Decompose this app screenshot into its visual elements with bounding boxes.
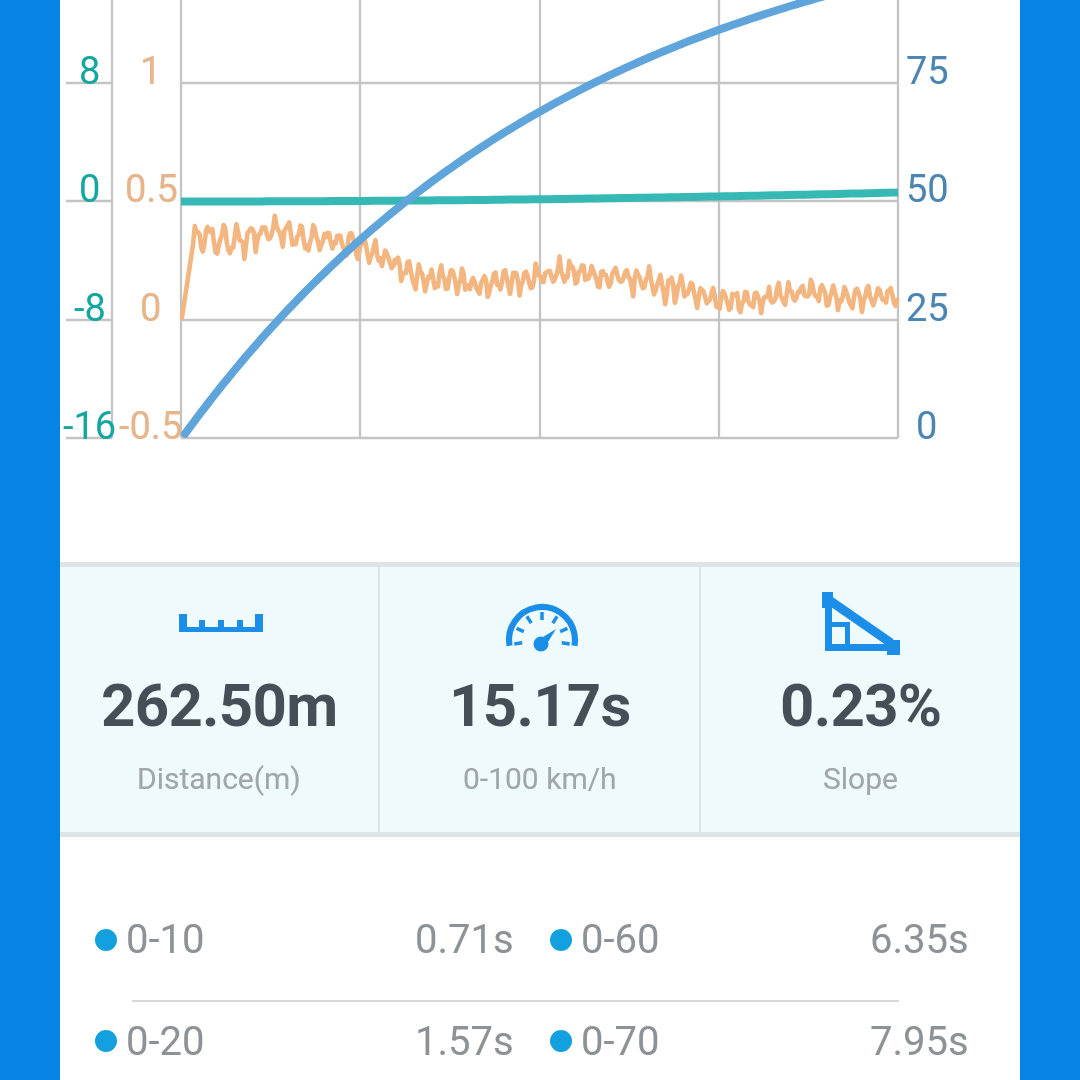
- staticText: 0: [79, 167, 101, 211]
- staticText: 0.23%: [780, 670, 942, 740]
- staticText: 0: [140, 286, 162, 330]
- staticText: 15.17s: [449, 670, 631, 740]
- other: Distance: [139, 590, 299, 666]
- button[interactable]: 0-20: [95, 1002, 550, 1080]
- staticText: 0.5: [125, 167, 178, 211]
- staticText: 0-60: [581, 916, 660, 963]
- other: Acceleration: [460, 590, 620, 666]
- staticText: -8: [74, 286, 106, 330]
- staticText: 0.71s: [415, 916, 514, 963]
- staticText: -0.5: [119, 404, 183, 448]
- button[interactable]: Acceleration: [380, 562, 699, 837]
- staticText: 0-20: [126, 1018, 205, 1065]
- staticText: 7.95s: [870, 1018, 969, 1065]
- staticText: 0-70: [581, 1018, 660, 1065]
- staticText: -16: [63, 404, 117, 448]
- button[interactable]: Distance: [60, 562, 378, 837]
- staticText: 262.50m: [101, 670, 338, 740]
- staticText: Slope: [823, 761, 898, 796]
- button[interactable]: 0-10: [95, 879, 550, 1000]
- staticText: 0: [916, 404, 938, 448]
- staticText: 50: [906, 167, 949, 211]
- staticText: 1.57s: [415, 1018, 514, 1065]
- staticText: 0-10: [126, 916, 205, 963]
- button[interactable]: Slope: [701, 562, 1020, 837]
- staticText: 6.35s: [870, 916, 969, 963]
- button[interactable]: 0-70: [550, 1002, 1005, 1080]
- other: Slope: [781, 590, 941, 666]
- button[interactable]: 0-60: [550, 879, 1005, 1000]
- staticText: 25: [906, 286, 949, 330]
- staticText: Distance(m): [137, 761, 301, 796]
- staticText: 1: [140, 49, 162, 93]
- staticText: 0-100 km/h: [463, 761, 617, 796]
- staticText: 8: [79, 49, 101, 93]
- staticText: 75: [906, 49, 949, 93]
